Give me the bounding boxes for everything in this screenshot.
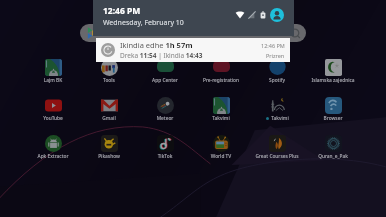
- staticText: 12:46 PM: [103, 5, 141, 17]
- button[interactable]: Tools: [81, 59, 137, 84]
- button[interactable]: Pikashow: [81, 135, 137, 160]
- staticText: 12:46 PM: [261, 42, 285, 49]
- button[interactable]: Lajm BK: [25, 59, 81, 84]
- staticText: Browser: [305, 115, 361, 122]
- staticText: Ikindia edhe 1h 57m: [120, 40, 193, 50]
- button[interactable]: App Center: [137, 59, 193, 84]
- staticText: Tools: [81, 77, 137, 84]
- staticText: YouTube: [25, 115, 81, 122]
- staticText: Quran_e_Pak: [305, 153, 361, 160]
- staticText: World TV: [193, 153, 249, 160]
- staticText: App Center: [137, 77, 193, 84]
- button[interactable]: YouTube: [25, 97, 81, 122]
- button[interactable]: Ikindia edhe 1h 57m: [96, 38, 290, 62]
- button[interactable]: Search: [80, 24, 306, 42]
- staticText: Great Courses Plus: [249, 153, 305, 160]
- staticText: Spotify: [249, 77, 305, 84]
- button[interactable]: Browser: [305, 97, 361, 122]
- staticText: Meteor: [137, 115, 193, 122]
- button[interactable]: Pre-registration: [193, 59, 249, 84]
- button[interactable]: Spotify: [249, 59, 305, 84]
- staticText: Apk Extractor: [25, 153, 81, 160]
- staticText: Dreka 11:54 | Ikindia 14:43: [120, 51, 203, 60]
- button[interactable]: Takvimi: [193, 97, 249, 122]
- staticText: Takvimi: [193, 115, 249, 122]
- button[interactable]: Meteor: [137, 97, 193, 122]
- button[interactable]: User account: [270, 8, 284, 22]
- staticText: Prizren: [266, 52, 285, 59]
- staticText: Lajm BK: [25, 77, 81, 84]
- staticText: TikTok: [137, 153, 193, 160]
- button[interactable]: Apk Extractor: [25, 135, 81, 160]
- button[interactable]: Takvimi: [249, 97, 305, 122]
- staticText: Islamska zajednica: [305, 77, 361, 84]
- button[interactable]: Great Courses Plus: [249, 135, 305, 160]
- button[interactable]: Islamska zajednica: [305, 59, 361, 84]
- button[interactable]: Quran_e_Pak: [305, 135, 361, 160]
- button[interactable]: World TV: [193, 135, 249, 160]
- button[interactable]: TikTok: [137, 135, 193, 160]
- staticText: Pikashow: [81, 153, 137, 160]
- staticText: Takvimi: [271, 115, 289, 122]
- staticText: Gmail: [81, 115, 137, 122]
- staticText: Pre-registration: [193, 77, 249, 84]
- staticText: Wednesday, February 10: [103, 18, 184, 28]
- button[interactable]: Gmail: [81, 97, 137, 122]
